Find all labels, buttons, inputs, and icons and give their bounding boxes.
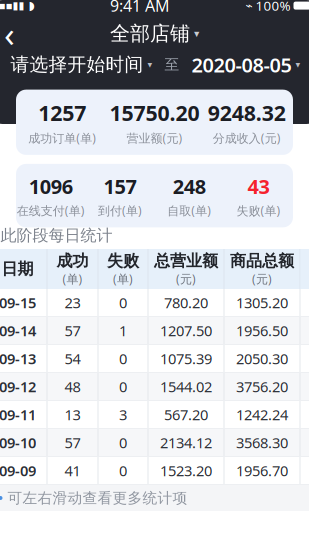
button[interactable]: 2020-08-05	[191, 47, 300, 82]
staticText: (单)	[62, 271, 82, 287]
staticText: 248	[173, 173, 206, 199]
staticText: (单)	[113, 271, 133, 287]
staticText: 1305.20	[236, 293, 288, 312]
staticText: 1257	[38, 99, 86, 127]
staticText: 此阶段每日统计	[0, 226, 112, 245]
staticText: 1544.02	[160, 377, 212, 396]
staticText: (元)	[252, 271, 272, 287]
staticText: 09-15	[0, 293, 36, 312]
staticText: 商品总额	[230, 251, 294, 271]
staticText: 1956.50	[236, 321, 288, 340]
staticText: 9:41 AM	[110, 0, 170, 16]
staticText: 自取(单)	[167, 202, 211, 218]
staticText: 157	[103, 173, 136, 199]
staticText: 0	[119, 349, 127, 368]
staticText: 9248.32	[208, 99, 286, 127]
staticText: 09-14	[0, 321, 36, 340]
staticText: ⌁	[245, 0, 252, 12]
staticText: 0	[119, 433, 127, 452]
staticText: 43	[247, 173, 269, 199]
staticText: 57	[64, 321, 80, 340]
staticText: 分成收入(元)	[213, 130, 281, 146]
button[interactable]: Back	[0, 17, 30, 51]
staticText: 成功	[56, 251, 88, 271]
staticText: 567.20	[164, 405, 208, 424]
staticText: 54	[64, 349, 80, 368]
staticText: 2020-08-05	[191, 51, 291, 78]
staticText: 09-12	[0, 377, 36, 396]
staticText: ‹	[4, 11, 15, 57]
staticText: 1242.24	[236, 405, 288, 424]
staticText: 0	[119, 293, 127, 312]
staticText: ◗	[28, 0, 34, 12]
staticText: 可左右滑动查看更多统计项	[7, 489, 187, 507]
staticText: ▾	[147, 59, 152, 70]
staticText: 日期	[1, 259, 33, 279]
staticText: 23	[64, 293, 80, 312]
staticText: 1075.39	[160, 349, 212, 368]
staticText: 0	[119, 461, 127, 480]
staticText: 失败	[107, 251, 139, 271]
staticText: ▪▪▮▮	[0, 0, 24, 12]
staticText: 营业额(元)	[126, 130, 182, 146]
staticText: 请选择开始时间	[10, 53, 143, 76]
staticText: 100%	[255, 0, 290, 14]
staticText: 13	[64, 405, 80, 424]
staticText: 在线支付(单)	[17, 202, 85, 218]
staticText: 1	[119, 321, 127, 340]
staticText: 57	[64, 433, 80, 452]
staticText: 失败(单)	[236, 202, 280, 218]
staticText: 3756.20	[236, 377, 288, 396]
staticText: ▾	[194, 28, 199, 40]
staticText: 成功订单(单)	[28, 130, 96, 146]
staticText: 41	[64, 461, 80, 480]
staticText: 1523.20	[160, 461, 212, 480]
staticText: 1096	[29, 173, 73, 199]
button[interactable]: 全部店铺	[104, 17, 205, 51]
staticText: 总营业额	[154, 251, 218, 271]
staticText: 09-09	[0, 461, 36, 480]
staticText: 48	[64, 377, 80, 396]
staticText: 3568.30	[236, 433, 288, 452]
staticText: 2050.30	[236, 349, 288, 368]
staticText: 至	[164, 56, 179, 74]
staticText: 3	[119, 405, 127, 424]
staticText: ▾	[295, 59, 300, 70]
staticText: 到付(单)	[98, 202, 142, 218]
staticText: 09-13	[0, 349, 36, 368]
staticText: (元)	[176, 271, 196, 287]
staticText: 全部店铺	[110, 21, 190, 46]
staticText: 1956.70	[236, 461, 288, 480]
staticText: 2134.12	[160, 433, 212, 452]
staticText: 15750.20	[109, 99, 199, 127]
staticText: 09-10	[0, 433, 36, 452]
staticText: 0	[119, 377, 127, 396]
staticText: 09-11	[0, 405, 36, 424]
staticText: 1207.50	[160, 321, 212, 340]
staticText: 780.20	[164, 293, 208, 312]
button[interactable]: 请选择开始时间	[10, 49, 152, 80]
